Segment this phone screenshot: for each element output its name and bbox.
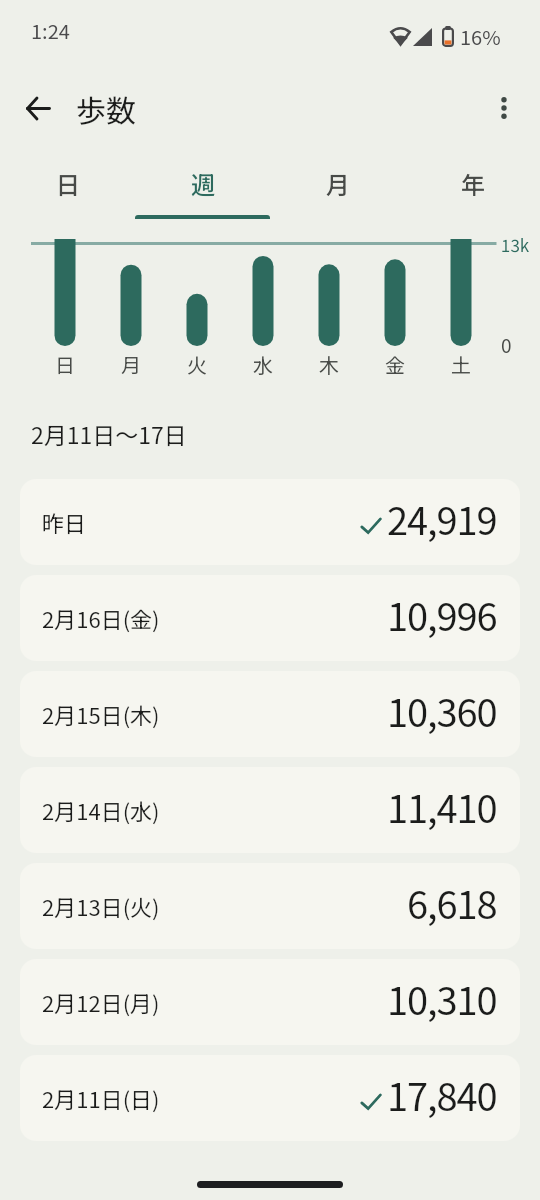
button[interactable]: 2月12日(月) [20,959,520,1045]
staticText: 年 [461,166,485,201]
staticText: 0 [501,331,512,359]
staticText: 週 [191,166,215,201]
button[interactable]: 2月16日(金) [20,575,520,661]
button[interactable]: 2月14日(水) [20,767,520,853]
staticText: 16% [460,22,501,51]
staticText: 月 [121,350,141,379]
button[interactable] [14,84,62,132]
staticText: 木 [319,350,339,379]
button[interactable]: 2月11日(日) [20,1055,520,1141]
staticText: 月 [326,166,350,201]
staticText: 水 [253,350,273,379]
staticText: 17,840 [387,1067,497,1122]
staticText: 6,618 [407,875,497,930]
button[interactable]: 日 [0,152,135,219]
staticText: 土 [451,350,471,379]
staticText: 13k [501,232,530,257]
staticText: 歩数 [76,87,136,130]
staticText: 火 [187,350,207,379]
staticText: 金 [385,350,405,379]
staticText: 11,410 [387,779,497,834]
button[interactable]: 2月13日(火) [20,863,520,949]
staticText: 10,310 [387,971,497,1026]
staticText: 2月15日(木) [42,698,160,730]
staticText: 2月11日(日) [42,1082,160,1114]
button[interactable]: 昨日 [20,479,520,565]
staticText: 2月16日(金) [42,602,160,634]
button[interactable]: 週 [135,152,270,219]
button[interactable]: 月 [270,152,405,219]
staticText: 2月14日(水) [42,794,160,826]
staticText: 2月12日(月) [42,986,160,1018]
staticText: 2月11日〜17日 [31,417,187,450]
staticText: 24,919 [387,491,497,546]
staticText: 2月13日(火) [42,890,160,922]
staticText: 1:24 [31,16,70,45]
button[interactable]: 2月15日(木) [20,671,520,757]
staticText: 昨日 [42,506,87,538]
staticText: 日 [55,350,75,379]
button[interactable]: 年 [405,152,540,219]
button[interactable] [480,84,528,132]
staticText: 日 [56,166,80,201]
staticText: 10,360 [387,683,497,738]
staticText: 10,996 [387,587,497,642]
